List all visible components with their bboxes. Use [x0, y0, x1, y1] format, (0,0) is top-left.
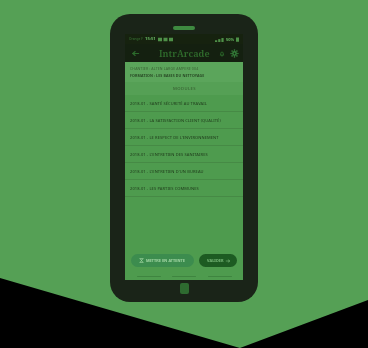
staticText: Orange F: [129, 37, 143, 41]
staticText: VALIDER: [207, 258, 224, 263]
button[interactable]: Notifications: [216, 48, 227, 59]
button[interactable]: 2018-01 - L'ENTRETIEN D'UN BUREAU: [125, 163, 243, 179]
button[interactable]: 2018-01 - LE RESPECT DE L'ENVIRONNEMENT: [125, 129, 243, 145]
button[interactable]: 2018-01 - SANTÉ SÉCURITÉ AU TRAVAIL: [125, 95, 243, 111]
staticText: FORMATION : LES BASES DU NETTOYAGE: [130, 73, 205, 78]
button[interactable]: Settings: [229, 48, 240, 59]
staticText: CHANTIER : ALTEN LARGE AMPERE 004: [130, 66, 199, 71]
staticText: 2018-01 - LA SATISFACTION CLIENT (QUALIT…: [130, 118, 221, 123]
staticText: 2018-01 - SANTÉ SÉCURITÉ AU TRAVAIL: [130, 101, 208, 106]
staticText: 2018-01 - L'ENTRETIEN D'UN BUREAU: [130, 169, 204, 174]
staticText: IntrArcade: [159, 47, 210, 59]
staticText: 2018-01 - L'ENTRETIEN DES SANITAIRES: [130, 152, 208, 157]
staticText: 2018-01 - LE RESPECT DE L'ENVIRONNEMENT: [130, 135, 219, 140]
button[interactable]: VALIDER: [199, 254, 237, 267]
button[interactable]: 2018-01 - LES PARTIES COMMUNES: [125, 180, 243, 196]
staticText: MODULES: [173, 86, 196, 92]
staticText: 15:51: [145, 36, 156, 42]
button[interactable]: METTRE EN ATTENTE: [131, 254, 194, 267]
staticText: 2018-01 - LES PARTIES COMMUNES: [130, 186, 199, 191]
button[interactable]: Back: [128, 46, 142, 60]
staticText: 50%: [226, 37, 235, 42]
button[interactable]: 2018-01 - L'ENTRETIEN DES SANITAIRES: [125, 146, 243, 162]
staticText: METTRE EN ATTENTE: [146, 258, 186, 263]
button[interactable]: 2018-01 - LA SATISFACTION CLIENT (QUALIT…: [125, 112, 243, 128]
other: Home: [180, 283, 189, 294]
